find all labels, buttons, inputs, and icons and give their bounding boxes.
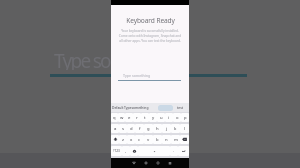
staticText: y [152, 115, 155, 121]
button[interactable]: s [119, 124, 127, 133]
staticText: f [139, 126, 141, 132]
button[interactable]: b [153, 135, 162, 144]
button[interactable]: w [118, 113, 125, 122]
staticText: q [113, 115, 116, 121]
button[interactable]: y [149, 113, 157, 122]
button[interactable]: j [162, 124, 171, 133]
button[interactable]: v [144, 135, 153, 144]
staticText: u [160, 115, 163, 121]
button[interactable]: Shift [111, 135, 119, 144]
staticText: d [130, 126, 133, 132]
button[interactable]: q [111, 113, 118, 122]
staticText: x [130, 137, 133, 143]
button[interactable]: ?123 [111, 146, 122, 156]
staticText: r [136, 115, 138, 121]
button[interactable]: Enter [178, 146, 189, 156]
button[interactable]: test [177, 105, 184, 109]
staticText: , [125, 148, 127, 154]
button[interactable]: Default [112, 105, 124, 109]
button[interactable]: g [144, 124, 153, 133]
button[interactable] [158, 105, 173, 111]
button[interactable]: o [173, 113, 181, 122]
staticText: . [173, 148, 175, 154]
button[interactable]: z [119, 135, 127, 144]
button[interactable]: x [127, 135, 135, 144]
staticText: n [165, 137, 168, 143]
staticText: g [147, 126, 150, 132]
staticText: v [147, 137, 150, 143]
button[interactable]: i [165, 113, 173, 122]
staticText: Your keyboard is successfully installed.… [118, 29, 182, 43]
staticText: z [122, 137, 124, 143]
staticText: t [144, 115, 146, 121]
button[interactable]: m [171, 135, 180, 144]
staticText: a [114, 126, 117, 132]
staticText: j [166, 126, 168, 132]
staticText: w [120, 115, 124, 121]
button[interactable]: a [111, 124, 119, 133]
button[interactable]: f [135, 124, 144, 133]
button[interactable]: . [170, 146, 178, 156]
button[interactable]: k [171, 124, 180, 133]
staticText: m [174, 137, 178, 143]
button[interactable]: n [162, 135, 171, 144]
button[interactable]: Backspace [180, 135, 189, 144]
staticText: e [128, 115, 131, 121]
button[interactable]: r [133, 113, 141, 122]
staticText: Type something [54, 48, 112, 70]
button[interactable]: Recents [154, 159, 162, 167]
button[interactable]: d [127, 124, 135, 133]
staticText: p [184, 115, 187, 121]
button[interactable]: , [122, 146, 130, 156]
staticText: Type something [123, 73, 182, 78]
staticText: s [122, 126, 125, 132]
staticText: Typesomething [124, 105, 149, 109]
button[interactable]: u [157, 113, 165, 122]
staticText: c [138, 137, 141, 143]
button[interactable]: Emoji [130, 146, 138, 156]
button[interactable]: h [153, 124, 162, 133]
staticText: h [156, 126, 159, 132]
staticText: Default [112, 105, 124, 109]
button[interactable]: e [125, 113, 133, 122]
staticText: l [184, 126, 186, 132]
staticText: test [177, 105, 184, 109]
staticText: ?123 [113, 149, 120, 153]
button[interactable]: Space [138, 146, 170, 156]
button[interactable]: Back [130, 159, 138, 167]
button[interactable]: Typesomething [124, 105, 149, 109]
staticText: o [176, 115, 179, 121]
button[interactable]: p [181, 113, 189, 122]
button[interactable]: l [180, 124, 189, 133]
staticText: b [156, 137, 159, 143]
staticText: k [174, 126, 177, 132]
button[interactable]: Screenshot [166, 159, 174, 167]
button[interactable]: t [141, 113, 149, 122]
staticText: i [168, 115, 170, 121]
button[interactable]: c [135, 135, 144, 144]
button[interactable]: Home [142, 159, 150, 167]
staticText: Keyboard Ready [126, 16, 175, 25]
